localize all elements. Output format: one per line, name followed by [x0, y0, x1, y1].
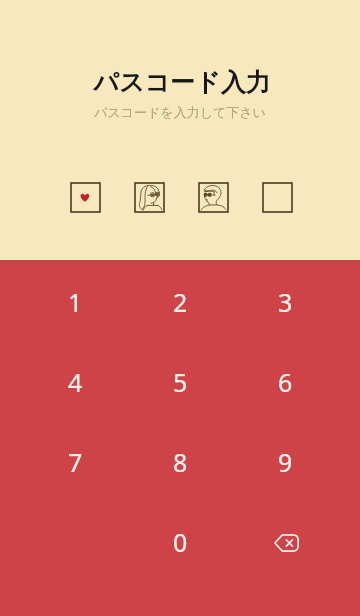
staticText: 0: [173, 525, 188, 559]
staticText: 6: [278, 365, 293, 399]
button[interactable]: 7: [22, 422, 128, 502]
staticText: 2: [173, 285, 188, 319]
button[interactable]: 4: [22, 342, 128, 422]
staticText: 8: [173, 445, 188, 479]
button[interactable]: 5: [128, 342, 233, 422]
button[interactable]: Passcode digit 3: [199, 183, 228, 212]
button[interactable]: 8: [128, 422, 233, 502]
button[interactable]: 3: [233, 262, 338, 342]
staticText: 7: [68, 445, 83, 479]
button[interactable]: 9: [233, 422, 338, 502]
button[interactable]: 2: [128, 262, 233, 342]
button[interactable]: 0: [128, 502, 233, 582]
staticText: 3: [278, 285, 293, 319]
staticText: 1: [68, 285, 83, 319]
button[interactable]: Passcode digit 1: [71, 183, 100, 212]
button[interactable]: Delete: [233, 502, 338, 582]
button[interactable]: Passcode digit 4: [263, 183, 292, 212]
staticText: 9: [278, 445, 293, 479]
staticText: 5: [173, 365, 188, 399]
staticText: パスコード入力: [2, 67, 360, 98]
staticText: 4: [68, 365, 83, 399]
button[interactable]: Passcode digit 2: [135, 183, 164, 212]
staticText: パスコードを入力して下さい: [0, 104, 360, 120]
button[interactable]: 1: [22, 262, 128, 342]
button[interactable]: 6: [233, 342, 338, 422]
